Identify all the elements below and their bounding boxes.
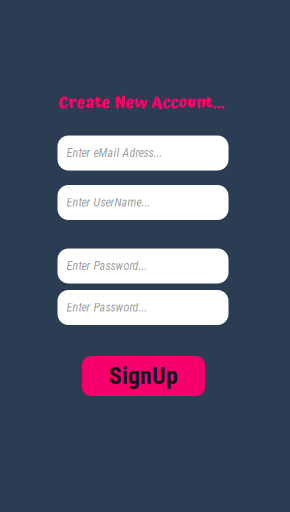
staticText: SignUp	[109, 362, 178, 390]
button[interactable]: SignUp	[82, 356, 205, 396]
button[interactable]: Enter Password...	[57, 290, 228, 325]
staticText: Create New Account...	[58, 90, 224, 116]
button[interactable]: Enter eMail Adress...	[57, 135, 228, 170]
staticText: Enter UserName...	[66, 195, 150, 210]
staticText: Enter Password...	[66, 259, 147, 273]
staticText: Enter eMail Adress...	[66, 146, 162, 160]
button[interactable]: Enter UserName...	[57, 185, 228, 220]
button[interactable]: Enter Password...	[57, 248, 228, 283]
staticText: Enter Password...	[66, 300, 147, 315]
